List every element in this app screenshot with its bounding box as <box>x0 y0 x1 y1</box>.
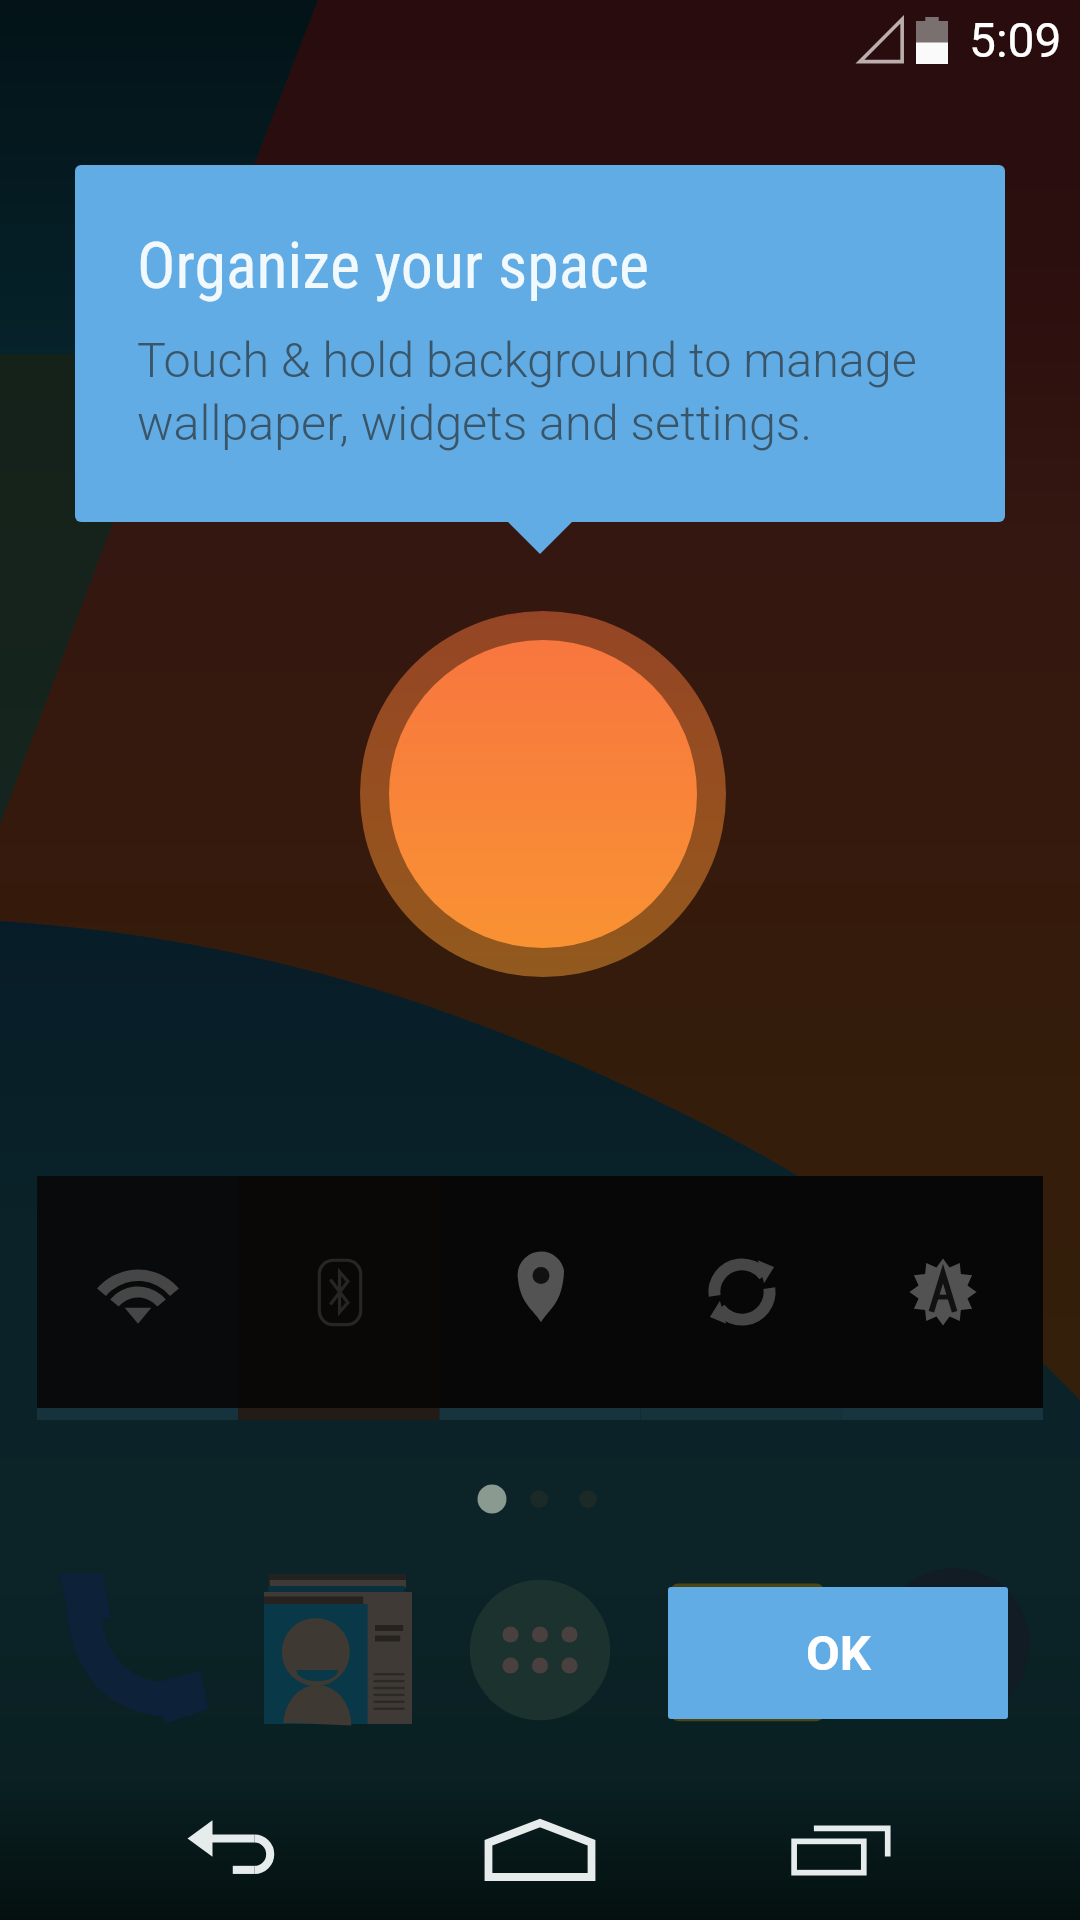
button[interactable]: Apps <box>450 1560 630 1740</box>
button[interactable]: Home <box>450 1780 630 1920</box>
button[interactable]: Back <box>149 1780 329 1920</box>
staticText: Organize your space <box>137 229 649 304</box>
staticText: OK <box>806 1625 871 1682</box>
button[interactable]: Wi-Fi <box>37 1176 239 1408</box>
button[interactable]: OK <box>668 1587 1008 1719</box>
button[interactable]: Location <box>440 1176 641 1408</box>
button[interactable]: Auto brightness <box>842 1176 1043 1408</box>
staticText: 5:09 <box>969 12 1062 68</box>
button[interactable]: Recents <box>753 1780 933 1920</box>
button[interactable]: Camera <box>870 1560 1038 1728</box>
button[interactable]: Contacts <box>264 1574 412 1724</box>
button[interactable]: Bluetooth <box>239 1176 440 1408</box>
button[interactable]: Phone <box>45 1560 215 1730</box>
staticText: Touch & hold background to manage wallpa… <box>137 332 1005 452</box>
button[interactable]: Sync <box>641 1176 842 1408</box>
button[interactable]: Browser <box>665 1560 833 1728</box>
